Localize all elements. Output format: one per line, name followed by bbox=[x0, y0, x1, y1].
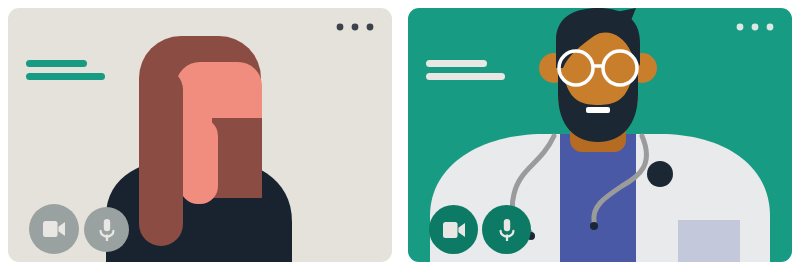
button[interactable]: Mute microphone bbox=[482, 205, 531, 254]
button[interactable]: Mute microphone bbox=[84, 207, 129, 252]
button[interactable]: Turn off camera bbox=[29, 204, 79, 254]
button[interactable]: Turn off camera bbox=[8, 8, 392, 262]
button[interactable]: Turn off camera bbox=[408, 8, 792, 262]
button[interactable]: Turn off camera bbox=[429, 205, 478, 254]
